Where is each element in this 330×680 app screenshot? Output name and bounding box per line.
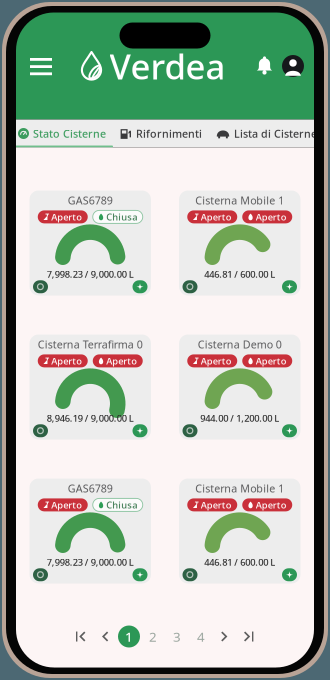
- button[interactable]: Aperto: [242, 498, 292, 511]
- button[interactable]: Profilo: [282, 55, 304, 77]
- button[interactable]: Aperto: [93, 354, 143, 367]
- staticText: Aperto: [256, 355, 287, 367]
- button[interactable]: Aperto: [187, 498, 237, 511]
- staticText: GAS6789: [68, 481, 113, 495]
- staticText: Cisterna Mobile 1: [195, 193, 284, 207]
- staticText: Aperto: [256, 211, 287, 223]
- button[interactable]: Aggiungi: [282, 280, 297, 293]
- button[interactable]: Aperto: [242, 210, 292, 223]
- button[interactable]: Dettagli: [33, 568, 48, 581]
- button[interactable]: Dettagli: [182, 424, 197, 437]
- staticText: 7,998.23 / 9,000.00 L: [47, 268, 134, 280]
- button[interactable]: Aggiungi: [282, 424, 297, 437]
- button[interactable]: Dettagli: [33, 424, 48, 437]
- staticText: 8,946.19 / 9,000.00 L: [47, 412, 134, 424]
- staticText: Lista di Cisterne: [234, 126, 317, 141]
- button[interactable]: Chiusa: [93, 498, 143, 511]
- staticText: Cisterna Terrafirma 0: [38, 337, 143, 351]
- staticText: Aperto: [201, 211, 232, 223]
- staticText: Stato Cisterne: [33, 126, 106, 141]
- button[interactable]: Aperto: [242, 354, 292, 367]
- staticText: 1: [125, 628, 133, 645]
- staticText: Chiusa: [106, 211, 137, 223]
- button[interactable]: Aggiungi: [132, 568, 147, 581]
- staticText: Rifornimenti: [136, 126, 202, 141]
- button[interactable]: Prima pagina: [70, 625, 92, 647]
- button[interactable]: Aggiungi: [132, 424, 147, 437]
- staticText: Cisterna Demo 0: [198, 337, 282, 351]
- staticText: Aperto: [51, 499, 82, 511]
- staticText: Aperto: [201, 499, 232, 511]
- staticText: 2: [149, 628, 157, 645]
- staticText: Chiusa: [106, 499, 137, 511]
- staticText: Verdea: [109, 43, 225, 89]
- button[interactable]: Dettagli: [182, 568, 197, 581]
- staticText: Aperto: [106, 355, 137, 367]
- button[interactable]: Notifiche: [256, 56, 273, 75]
- button[interactable]: Aggiungi: [282, 568, 297, 581]
- button[interactable]: Stato Cisterne: [11, 119, 113, 147]
- button[interactable]: 3: [166, 625, 188, 647]
- button[interactable]: Aggiungi: [132, 280, 147, 293]
- staticText: 446.81 / 600.00 L: [204, 268, 275, 280]
- button[interactable]: Ultima pagina: [238, 625, 260, 647]
- button[interactable]: 1: [118, 625, 140, 647]
- staticText: GAS6789: [68, 193, 113, 207]
- staticText: 944.00 / 1,200.00 L: [200, 412, 279, 424]
- button[interactable]: Aperto: [38, 498, 88, 511]
- button[interactable]: Aperto: [38, 354, 88, 367]
- button[interactable]: Aperto: [187, 354, 237, 367]
- button[interactable]: Aperto: [38, 210, 88, 223]
- staticText: Cisterna Mobile 1: [195, 481, 284, 495]
- button[interactable]: Dettagli: [33, 280, 48, 293]
- button[interactable]: Chiusa: [93, 210, 143, 223]
- button[interactable]: 4: [190, 625, 212, 647]
- staticText: Aperto: [201, 355, 232, 367]
- staticText: 4: [197, 628, 205, 645]
- button[interactable]: Rifornimenti: [113, 119, 209, 147]
- staticText: Aperto: [256, 499, 287, 511]
- button[interactable]: Aperto: [187, 210, 237, 223]
- staticText: 446.81 / 600.00 L: [204, 556, 275, 568]
- staticText: Aperto: [51, 355, 82, 367]
- button[interactable]: 2: [142, 625, 164, 647]
- staticText: Aperto: [51, 211, 82, 223]
- button[interactable]: Lista di Cisterne: [209, 119, 324, 147]
- staticText: 7,998.23 / 9,000.00 L: [47, 556, 134, 568]
- button[interactable]: Menu: [25, 49, 57, 83]
- button[interactable]: Pagina successiva: [214, 625, 236, 647]
- staticText: 3: [173, 628, 181, 645]
- button[interactable]: Pagina precedente: [94, 625, 116, 647]
- button[interactable]: Dettagli: [182, 280, 197, 293]
